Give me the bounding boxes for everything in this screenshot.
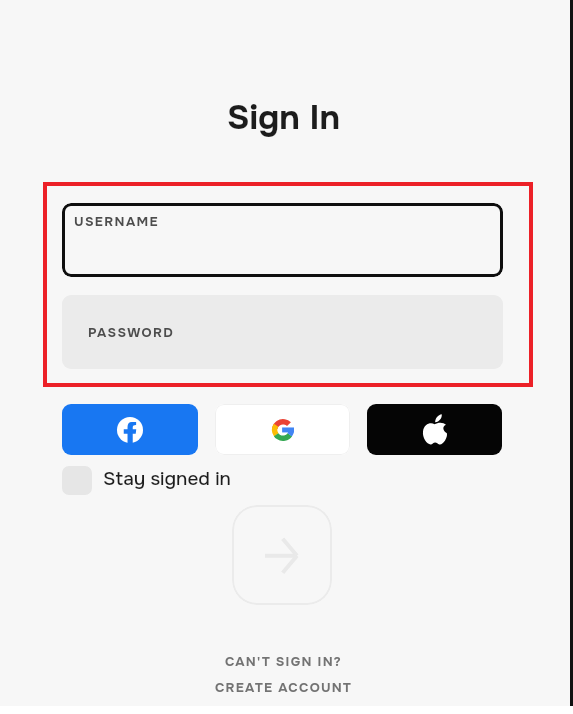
button[interactable]: Stay signed in bbox=[62, 463, 231, 495]
button[interactable]: Sign in with Facebook bbox=[62, 404, 198, 455]
staticText: PASSWORD bbox=[88, 324, 175, 341]
staticText: USERNAME bbox=[74, 213, 159, 230]
button[interactable]: Sign in with Google bbox=[215, 404, 350, 455]
button[interactable]: Sign in with Apple bbox=[367, 404, 502, 455]
button[interactable]: PASSWORD bbox=[62, 295, 503, 369]
button[interactable]: CREATE ACCOUNT bbox=[0, 679, 570, 696]
button[interactable]: CAN'T SIGN IN? bbox=[0, 653, 570, 670]
staticText: Sign In bbox=[0, 96, 570, 139]
button[interactable]: USERNAME bbox=[62, 203, 503, 277]
button[interactable]: Submit bbox=[232, 505, 332, 605]
staticText: Stay signed in bbox=[103, 467, 231, 491]
